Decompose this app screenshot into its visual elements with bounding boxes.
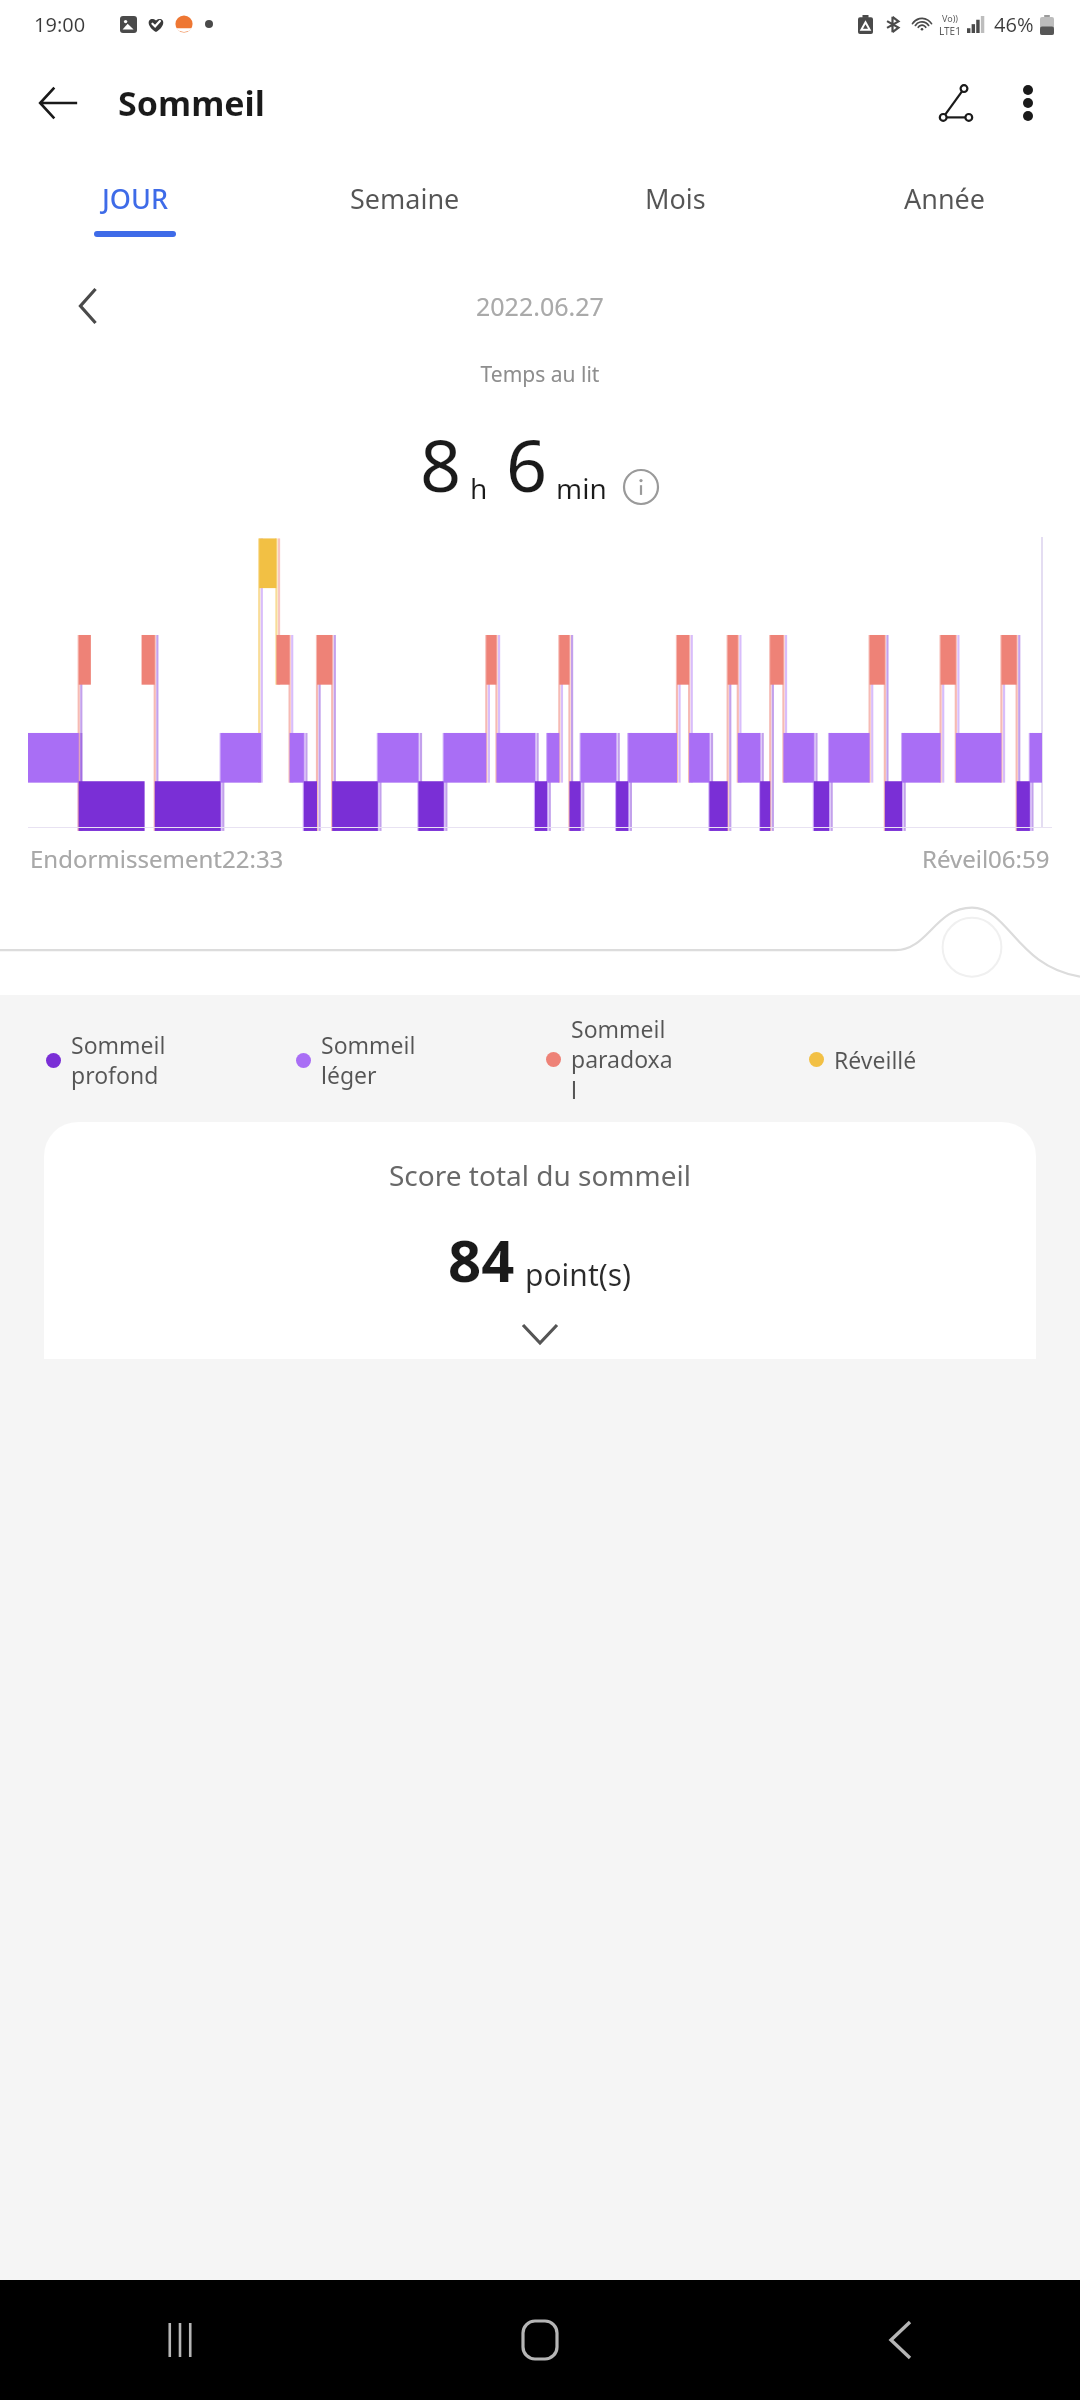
staticText: Endormissement22:33	[30, 842, 284, 875]
button[interactable]: Share	[920, 67, 992, 139]
button[interactable]: Année	[810, 158, 1080, 258]
staticText: Sommeil léger	[321, 1029, 416, 1091]
staticText: min	[556, 469, 607, 507]
staticText: 6	[506, 415, 548, 513]
button[interactable]: Recent apps	[0, 2280, 360, 2400]
button[interactable]: Back	[720, 2280, 1080, 2400]
staticText: h	[470, 469, 488, 507]
button[interactable]: Réveillé	[809, 1044, 1034, 1075]
staticText: LTE1	[939, 24, 961, 38]
staticText: Semaine	[350, 180, 460, 217]
button[interactable]: Sommeil profond	[46, 1029, 296, 1091]
button[interactable]: Mois	[540, 158, 810, 258]
button[interactable]: Sommeil paradoxa l	[546, 1013, 809, 1106]
staticText: 8	[420, 415, 462, 513]
staticText: Sommeil paradoxa l	[571, 1013, 673, 1106]
button[interactable]: Score total du sommeil	[44, 1122, 1036, 1359]
button[interactable]: Back	[26, 71, 90, 135]
button[interactable]: Sommeil léger	[296, 1029, 546, 1091]
button[interactable]: Semaine	[270, 158, 540, 258]
staticText: Réveil06:59	[922, 842, 1050, 875]
staticText: Vo))	[942, 12, 959, 24]
button[interactable]: JOUR	[0, 158, 270, 258]
staticText: Sommeil	[118, 80, 265, 126]
staticText: Mois	[645, 180, 706, 217]
staticText: Réveillé	[834, 1044, 917, 1075]
staticText: Score total du sommeil	[389, 1156, 691, 1194]
staticText: Sommeil profond	[71, 1029, 166, 1091]
staticText: point(s)	[525, 1254, 632, 1295]
button[interactable]: Previous day	[60, 278, 116, 334]
button[interactable]: More options	[992, 67, 1064, 139]
staticText: JOUR	[102, 180, 168, 217]
staticText: 46%	[994, 11, 1034, 38]
button[interactable]: Information	[621, 467, 661, 507]
staticText: 19:00	[34, 11, 86, 38]
button[interactable]: Home	[360, 2280, 720, 2400]
staticText: Temps au lit	[0, 360, 1080, 389]
staticText: 2022.06.27	[476, 289, 604, 323]
staticText: 84	[448, 1220, 515, 1299]
staticText: Année	[904, 180, 986, 217]
